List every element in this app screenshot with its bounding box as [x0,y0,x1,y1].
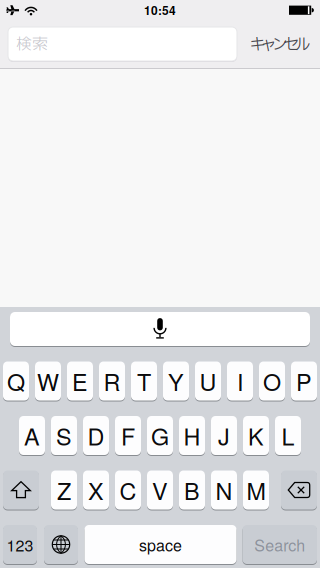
staticText: 123 [6,533,33,556]
staticText: space [139,533,182,556]
button[interactable]: キャンセル [249,33,311,57]
staticText: A [24,419,40,452]
button[interactable]: Dictate [10,312,310,346]
staticText: T [137,364,151,398]
staticText: S [56,419,72,452]
staticText: N [215,473,232,507]
staticText: E [72,364,88,398]
button[interactable]: B [179,470,205,509]
button[interactable]: R [99,361,125,400]
staticText: G [151,419,169,452]
button[interactable]: K [243,416,269,455]
button[interactable]: U [195,361,221,400]
button[interactable]: Next keyboard [44,525,78,564]
staticText: D [87,419,104,452]
staticText: R [103,364,120,398]
button[interactable]: 123 [3,525,37,564]
staticText: L [281,419,294,452]
staticText: C [119,473,136,507]
staticText: I [237,364,243,398]
staticText: W [37,364,59,398]
staticText: B [184,473,200,507]
staticText: Search [254,533,305,556]
button[interactable]: J [211,416,237,455]
staticText: X [88,473,104,507]
button[interactable]: space [84,525,236,564]
staticText: J [218,419,230,452]
staticText: U [199,364,216,398]
staticText: キャンセル [249,33,311,57]
staticText: F [121,419,135,452]
staticText: V [152,473,168,507]
button[interactable]: C [115,470,141,509]
staticText: 検索 [16,32,48,56]
button[interactable]: V [147,470,173,509]
button[interactable]: X [83,470,109,509]
button[interactable]: E [67,361,93,400]
button[interactable]: Shift [3,470,39,509]
staticText: M [246,473,265,507]
staticText: O [263,364,281,398]
staticText: H [183,419,200,452]
button[interactable]: Z [51,470,77,509]
button[interactable]: Search [242,525,317,564]
button[interactable]: H [179,416,205,455]
button[interactable]: W [35,361,61,400]
button[interactable]: A [19,416,45,455]
staticText: P [296,364,312,398]
button[interactable]: O [259,361,285,400]
button[interactable]: Delete [281,470,317,509]
button[interactable]: M [243,470,269,509]
staticText: 10:54 [144,1,176,19]
staticText: Q [7,364,25,398]
button[interactable]: P [291,361,317,400]
staticText: K [248,419,264,452]
button[interactable]: I [227,361,253,400]
button[interactable]: T [131,361,157,400]
button[interactable]: G [147,416,173,455]
button[interactable]: 検索 [8,27,237,61]
button[interactable]: N [211,470,237,509]
button[interactable]: L [275,416,301,455]
staticText: Z [57,473,71,507]
button[interactable]: D [83,416,109,455]
staticText: Y [168,364,184,398]
button[interactable]: F [115,416,141,455]
button[interactable]: S [51,416,77,455]
button[interactable]: Y [163,361,189,400]
button[interactable]: Q [3,361,29,400]
